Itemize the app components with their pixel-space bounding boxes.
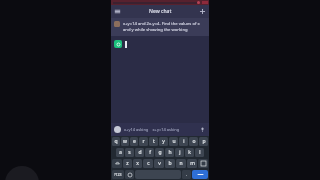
staticText: and y while showing the working — [123, 27, 188, 33]
button[interactable]: Symbols — [112, 170, 124, 179]
button[interactable]: x+y14 asking x+y=14 asking — [114, 123, 206, 136]
button[interactable]: h — [165, 148, 174, 157]
staticText: p — [202, 138, 206, 145]
staticText: s — [128, 149, 131, 156]
staticText: . — [186, 172, 188, 177]
staticText: e — [133, 138, 136, 145]
button[interactable]: Shift — [112, 159, 122, 168]
staticText: h — [168, 149, 172, 156]
staticText: i — [183, 138, 185, 145]
button[interactable]: i — [179, 137, 188, 146]
staticText: k — [188, 149, 191, 156]
button[interactable]: t — [149, 137, 158, 146]
staticText: v — [158, 160, 161, 167]
staticText: ?123 — [114, 172, 122, 177]
button[interactable]: Voice input — [199, 126, 206, 133]
button[interactable]: x+y=14 and 2x-y=4. Find the values of x — [114, 21, 206, 33]
staticText: x+y=14 and 2x-y=4. Find the values of x — [123, 21, 200, 27]
button[interactable]: z — [123, 159, 132, 168]
button[interactable]: l — [195, 148, 204, 157]
button[interactable]: w — [121, 137, 129, 146]
staticText: y — [162, 138, 165, 145]
staticText: x+y14 asking x+y=14 asking — [124, 127, 199, 132]
button[interactable]: x — [133, 159, 142, 168]
staticText: w — [123, 138, 127, 145]
staticText: c — [147, 160, 150, 167]
button[interactable]: k — [185, 148, 194, 157]
staticText: t — [153, 138, 155, 145]
staticText: z — [126, 160, 129, 167]
button[interactable]: m — [187, 159, 197, 168]
staticText: j — [179, 149, 181, 156]
staticText: f — [149, 149, 151, 156]
staticText: u — [172, 138, 176, 145]
button[interactable]: r — [139, 137, 148, 146]
staticText: d — [138, 149, 142, 156]
staticText: a — [119, 149, 122, 156]
button[interactable]: Emoji — [125, 170, 134, 179]
staticText: r — [142, 138, 145, 145]
button[interactable]: s — [125, 148, 134, 157]
button[interactable]: Backspace — [198, 159, 208, 168]
button[interactable]: j — [175, 148, 184, 157]
staticText: o — [192, 138, 196, 145]
button[interactable]: g — [155, 148, 164, 157]
button[interactable]: p — [199, 137, 208, 146]
staticText: n — [179, 160, 183, 167]
button[interactable]: u — [169, 137, 178, 146]
staticText: m — [190, 160, 195, 167]
staticText: b — [168, 160, 172, 167]
staticText: l — [199, 149, 201, 156]
staticText: g — [158, 149, 162, 156]
button[interactable]: v — [154, 159, 164, 168]
button[interactable]: d — [135, 148, 144, 157]
button[interactable]: New chat — [198, 7, 207, 16]
button[interactable] — [114, 36, 206, 52]
button[interactable]: y — [159, 137, 168, 146]
staticText: q — [114, 138, 118, 145]
staticText: x — [136, 160, 139, 167]
button[interactable]: e — [130, 137, 138, 146]
button[interactable]: n — [176, 159, 186, 168]
staticText: New chat — [149, 8, 172, 15]
button[interactable]: Send — [192, 170, 208, 179]
button[interactable]: Menu — [113, 7, 122, 16]
button[interactable]: c — [143, 159, 153, 168]
button[interactable]: q — [112, 137, 120, 146]
button[interactable]: b — [165, 159, 175, 168]
button[interactable]: o — [189, 137, 198, 146]
button[interactable]: f — [145, 148, 154, 157]
button[interactable]: Period — [182, 170, 191, 179]
button[interactable]: a — [116, 148, 124, 157]
